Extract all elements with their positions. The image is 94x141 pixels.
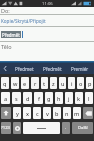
button[interactable]: u [59, 77, 66, 89]
staticText: n [65, 110, 69, 117]
staticText: Další [78, 125, 88, 131]
staticText: r [34, 80, 37, 87]
staticText: f [38, 95, 40, 102]
staticText: c [36, 110, 39, 117]
button[interactable]: Settings [13, 122, 21, 134]
button[interactable]: Do: [1, 7, 94, 14]
button[interactable]: n [63, 107, 71, 119]
button[interactable]: j [65, 92, 73, 104]
staticText: Předmět [2, 32, 20, 38]
button[interactable]: e [21, 77, 29, 89]
button[interactable]: Tělo [1, 42, 94, 51]
staticText: u [61, 80, 65, 87]
staticText: v [46, 110, 49, 117]
staticText: y [16, 110, 19, 117]
staticText: z [52, 80, 55, 87]
staticText: Kopie/Skrytá/Připojit [1, 18, 46, 24]
staticText: x [26, 110, 29, 117]
button[interactable]: l [85, 92, 93, 104]
button[interactable]: k [75, 92, 83, 104]
staticText: a [4, 95, 8, 102]
button[interactable]: Previous suggestion [0, 63, 10, 74]
button[interactable]: Space [23, 122, 60, 134]
button[interactable]: y [13, 107, 21, 119]
staticText: Předmet [15, 66, 34, 72]
button[interactable]: Backspace [83, 107, 93, 119]
staticText: g [47, 95, 51, 102]
staticText: m [74, 110, 80, 117]
staticText: j [68, 95, 70, 102]
button[interactable]: f [34, 92, 43, 104]
staticText: . [65, 125, 67, 131]
staticText: Předmět [43, 66, 62, 72]
staticText: Tělo [1, 43, 12, 50]
staticText: 11:06 [42, 1, 53, 7]
staticText: ?123 [1, 125, 11, 131]
button[interactable]: Předmet [10, 63, 38, 74]
button[interactable]: w [11, 77, 19, 89]
button[interactable]: v [43, 107, 51, 119]
staticText: w [13, 80, 18, 87]
staticText: p [88, 80, 92, 87]
staticText: t [43, 80, 46, 87]
button[interactable]: Další [72, 122, 93, 134]
staticText: o [79, 80, 83, 87]
button[interactable]: g [45, 92, 53, 104]
button[interactable]: a [1, 92, 10, 104]
staticText: Premiér [71, 66, 89, 72]
button[interactable]: o [77, 77, 84, 89]
button[interactable]: Předmět [38, 63, 66, 74]
button[interactable]: c [33, 107, 41, 119]
button[interactable]: Kopie/Skrytá/Připojit [1, 15, 94, 26]
button[interactable]: ?123 [1, 122, 11, 134]
button[interactable]: Shift [1, 107, 11, 119]
button[interactable]: x [23, 107, 31, 119]
staticText: b [55, 110, 59, 117]
button[interactable]: d [23, 92, 32, 104]
staticText: d [26, 95, 30, 102]
staticText: k [77, 95, 81, 102]
staticText: h [57, 95, 61, 102]
button[interactable]: h [55, 92, 63, 104]
button[interactable]: Předmět [0, 27, 94, 41]
button[interactable]: m [73, 107, 81, 119]
staticText: l [88, 95, 90, 102]
button[interactable]: r [31, 77, 39, 89]
staticText: q [3, 80, 7, 87]
button[interactable]: . [62, 122, 70, 134]
button[interactable]: Premiér [66, 63, 94, 74]
button[interactable]: b [53, 107, 61, 119]
staticText: i [71, 80, 73, 87]
button[interactable]: q [1, 77, 9, 89]
button[interactable]: i [68, 77, 75, 89]
staticText: s [15, 95, 18, 102]
button[interactable]: t [41, 77, 48, 89]
button[interactable]: s [12, 92, 21, 104]
staticText: Do: [1, 7, 10, 14]
button[interactable]: z [50, 77, 57, 89]
staticText: e [23, 80, 27, 87]
button[interactable]: p [86, 77, 93, 89]
